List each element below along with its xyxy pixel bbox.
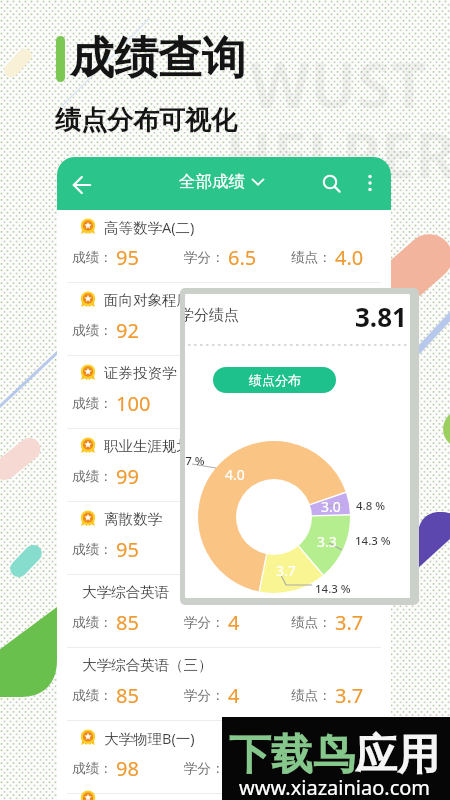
staticText: 99 xyxy=(116,463,139,490)
button[interactable]: 大学物理B(一) xyxy=(57,721,391,793)
button[interactable]: 大学物理B(二) xyxy=(57,794,391,800)
staticText: 学分： xyxy=(184,687,225,704)
button[interactable]: Search xyxy=(312,164,348,200)
staticText: 成绩： xyxy=(72,468,113,485)
button[interactable]: 绩点分布 xyxy=(213,367,336,393)
button[interactable]: 证券投资学 xyxy=(57,356,391,428)
button[interactable]: Back xyxy=(64,167,100,203)
staticText: 3.3 xyxy=(317,532,337,551)
staticText: 4.0 xyxy=(335,755,364,782)
staticText: 4.0 xyxy=(335,536,364,563)
staticText: 4 xyxy=(228,682,240,709)
button[interactable]: 离散数学 xyxy=(57,502,391,574)
staticText: 85 xyxy=(116,682,139,709)
staticText: 2 xyxy=(228,390,240,417)
staticText: 大学物理B(一) xyxy=(104,728,195,748)
staticText: 绩点： xyxy=(291,687,332,704)
staticText: 66.7 % xyxy=(185,453,205,469)
staticText: 学分： xyxy=(184,541,225,558)
staticText: 成绩： xyxy=(72,687,113,704)
staticText: WUST xyxy=(250,42,427,126)
staticText: 6.5 xyxy=(228,244,257,271)
staticText: 大学综合英语（三） xyxy=(82,656,213,674)
button[interactable]: 全部成绩 xyxy=(179,171,264,192)
staticText: 应用 xyxy=(355,729,439,782)
staticText: 下载鸟 xyxy=(229,729,355,782)
staticText: 4.0 xyxy=(335,244,364,271)
staticText: 绩点： xyxy=(291,249,332,266)
staticText: 成绩： xyxy=(72,395,113,412)
staticText: 4.8 % xyxy=(356,498,386,514)
staticText: 大学综合英语 xyxy=(82,583,169,601)
button[interactable]: 高等数学A(二) xyxy=(57,210,391,282)
button[interactable]: 大学综合英语 xyxy=(57,575,391,647)
staticText: 95 xyxy=(116,244,139,271)
staticText: 高等数学A(二) xyxy=(104,217,195,237)
staticText: 学分： xyxy=(184,760,225,777)
staticText: 3.7 xyxy=(276,561,296,580)
staticText: 学分： xyxy=(184,322,225,339)
staticText: 成绩： xyxy=(72,760,113,777)
staticText: 3.81 xyxy=(355,299,407,334)
staticText: 14.3 % xyxy=(315,581,351,597)
button[interactable]: More options xyxy=(352,165,388,201)
staticText: 92 xyxy=(116,317,139,344)
staticText: 4.0 xyxy=(335,317,364,344)
staticText: 95 xyxy=(116,536,139,563)
staticText: 3.7 xyxy=(335,609,364,636)
staticText: 4.0 xyxy=(225,465,245,484)
staticText: 离散数学 xyxy=(104,510,162,528)
staticText: 4 xyxy=(228,609,240,636)
staticText: 绩点： xyxy=(291,760,332,777)
staticText: 绩点分布 xyxy=(249,372,301,388)
staticText: 绩点： xyxy=(291,541,332,558)
button[interactable]: 面向对象程序设计 xyxy=(57,283,391,355)
staticText: 学分： xyxy=(184,614,225,631)
staticText: 面向对象程序设计 xyxy=(104,291,220,309)
staticText: 绩点： xyxy=(291,468,332,485)
staticText: 绩点分布可视化 xyxy=(55,104,237,137)
button[interactable]: 大学综合英语（三） xyxy=(57,648,391,720)
staticText: 85 xyxy=(116,609,139,636)
button[interactable]: 职业生涯规划 xyxy=(57,429,391,501)
staticText: 职业生涯规划 xyxy=(104,437,191,455)
staticText: 学分： xyxy=(184,395,225,412)
staticText: 成绩： xyxy=(72,249,113,266)
staticText: 1 xyxy=(228,463,240,490)
staticText: 3.0 xyxy=(321,497,341,516)
staticText: www.xiazainiao.com xyxy=(239,774,431,800)
staticText: 100 xyxy=(116,390,151,417)
staticText: 4.0 xyxy=(335,463,364,490)
staticText: 3 xyxy=(228,317,240,344)
staticText: 学分： xyxy=(184,468,225,485)
staticText: 证券投资学 xyxy=(104,364,177,382)
staticText: 学分： xyxy=(184,249,225,266)
staticText: 98 xyxy=(116,755,139,782)
staticText: 绩点： xyxy=(291,614,332,631)
staticText: 成绩查询 xyxy=(70,31,246,86)
staticText: HELPER xyxy=(225,112,450,196)
staticText: 成绩： xyxy=(72,541,113,558)
staticText: 学分绩点 xyxy=(185,306,239,325)
staticText: 3.7 xyxy=(335,682,364,709)
staticText: 成绩： xyxy=(72,322,113,339)
staticText: 全部成绩 xyxy=(179,171,245,192)
staticText: 成绩： xyxy=(72,614,113,631)
staticText: 14.3 % xyxy=(355,533,391,549)
